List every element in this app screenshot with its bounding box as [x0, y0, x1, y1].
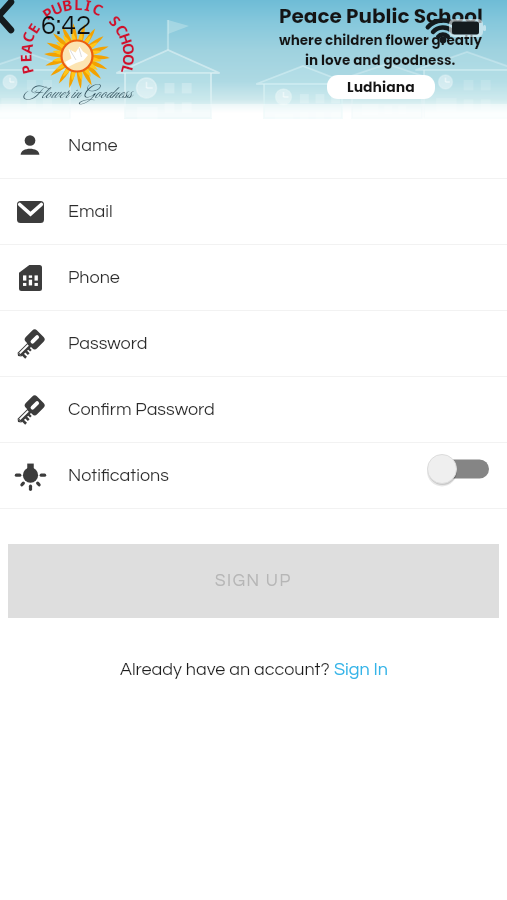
staticText: where children flower greatly — [279, 31, 483, 50]
staticText: E — [23, 19, 44, 37]
staticText: S — [105, 11, 126, 31]
staticText: C — [111, 21, 133, 39]
staticText: SIGN UP — [215, 572, 292, 590]
staticText: Peace Public School — [279, 2, 483, 30]
staticText: Name — [68, 136, 118, 155]
staticText: E — [15, 53, 36, 63]
staticText: Phone — [68, 268, 120, 287]
staticText: C — [17, 29, 39, 45]
staticText: Sign In — [334, 660, 388, 679]
staticText: L — [74, 0, 83, 14]
staticText: O — [119, 53, 139, 67]
button[interactable]: Confirm Password — [0, 377, 507, 442]
staticText: C — [89, 0, 107, 20]
staticText: Ludhiana — [347, 77, 415, 97]
button[interactable]: Sign In — [334, 660, 388, 679]
staticText: B — [60, 0, 74, 16]
button[interactable]: Phone — [0, 245, 507, 310]
button[interactable]: Password — [0, 311, 507, 376]
staticText: Confirm Password — [68, 400, 215, 419]
staticText: O — [118, 42, 140, 56]
staticText: A — [16, 41, 37, 55]
button[interactable]: Ludhiana — [347, 77, 415, 97]
staticText: P — [16, 62, 38, 76]
staticText: Notifications — [68, 466, 169, 485]
staticText: Already have an account? — [120, 660, 334, 679]
staticText: H — [115, 30, 137, 48]
staticText: in love and goodness. — [305, 51, 456, 70]
button[interactable]: Notifications — [0, 443, 507, 508]
button[interactable]: Name — [0, 113, 507, 178]
staticText: Flower in Goodness — [22, 84, 132, 105]
button[interactable]: Email — [0, 179, 507, 244]
staticText: Password — [68, 334, 148, 353]
staticText: I — [83, 0, 93, 15]
button[interactable]: Toggle notifications — [428, 459, 489, 493]
staticText: P — [38, 2, 58, 24]
staticText: Email — [68, 202, 113, 221]
staticText: 6:42 — [41, 12, 92, 40]
staticText: L — [117, 63, 138, 77]
staticText: U — [48, 0, 66, 20]
